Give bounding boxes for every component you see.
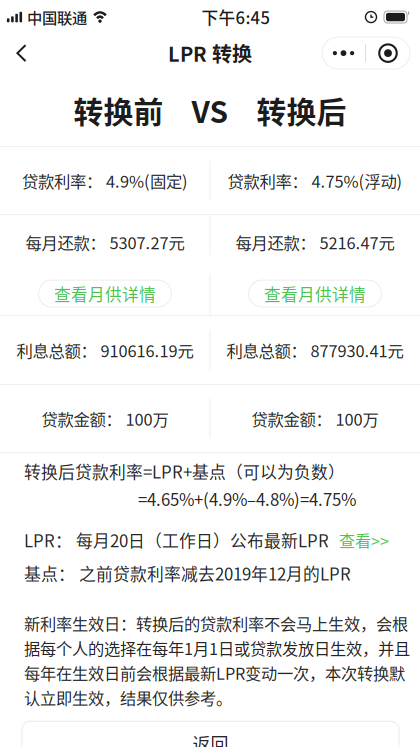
- staticText: 利息总额： 877930.41元: [226, 338, 403, 362]
- button[interactable]: More: [322, 37, 420, 69]
- button[interactable]: 查看>>: [339, 528, 389, 552]
- staticText: 查看月供详情: [264, 282, 366, 306]
- button[interactable]: 查看月供详情: [248, 280, 381, 307]
- staticText: 贷款利率： 4.9%(固定): [22, 169, 188, 192]
- staticText: 基点： 之前贷款利率减去2019年12月的LPR: [24, 561, 351, 585]
- staticText: 转换后贷款利率=LPR+基点（可以为负数）: [24, 459, 345, 483]
- staticText: 贷款利率： 4.75%(浮动): [227, 169, 402, 192]
- button[interactable]: 返回: [22, 721, 399, 747]
- staticText: 返回: [192, 730, 228, 747]
- staticText: 新利率生效日：转换后的贷款利率不会马上生效，会根据每个人的选择在每年1月1日或贷…: [24, 611, 410, 709]
- staticText: LPR： 每月20日（工作日）公布最新LPR: [24, 528, 329, 552]
- staticText: LPR 转换: [168, 39, 252, 68]
- staticText: 下午6:45: [201, 5, 270, 29]
- staticText: 查看>>: [339, 528, 389, 552]
- staticText: 中国联通: [27, 6, 87, 28]
- button[interactable]: 查看月供详情: [38, 280, 171, 307]
- staticText: 贷款金额： 100万: [41, 407, 168, 430]
- staticText: 每月还款： 5307.27元: [25, 230, 184, 254]
- button[interactable]: Back: [0, 34, 43, 72]
- staticText: 利息总额： 910616.19元: [16, 338, 193, 362]
- staticText: 转换前 VS 转换后: [73, 89, 346, 132]
- staticText: 贷款金额： 100万: [251, 407, 378, 430]
- staticText: 查看月供详情: [54, 282, 156, 306]
- staticText: =4.65%+(4.9%–4.8%)=4.75%: [138, 486, 356, 511]
- staticText: 每月还款： 5216.47元: [235, 230, 394, 254]
